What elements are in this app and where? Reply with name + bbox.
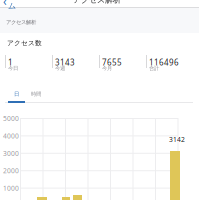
button[interactable]: 日 — [8, 88, 25, 100]
staticText: 7655 — [102, 57, 122, 68]
staticText: 4000 — [3, 131, 19, 140]
staticText: 今日 — [8, 65, 18, 72]
staticText: 1 — [8, 57, 13, 68]
staticText: 3000 — [3, 149, 19, 158]
staticText: 1000 — [3, 184, 19, 193]
staticText: 116496 — [149, 57, 179, 68]
staticText: 今週 — [55, 65, 65, 72]
staticText: ホーム — [8, 0, 24, 11]
staticText: アクセス解析 — [73, 0, 121, 5]
staticText: 日 — [14, 91, 19, 97]
staticText: 3143 — [55, 57, 75, 68]
staticText: 5000 — [3, 114, 19, 123]
staticText: 3142 — [169, 135, 185, 144]
staticText: 今月 — [102, 65, 112, 72]
staticText: 合計 — [149, 65, 159, 72]
staticText: ‹ — [3, 0, 7, 9]
staticText: アクセス解析 — [6, 19, 36, 26]
button[interactable]: 戻る — [3, 0, 31, 6]
staticText: 2000 — [3, 166, 19, 175]
button[interactable]: 時間 — [29, 88, 43, 100]
staticText: アクセス数 — [7, 39, 42, 47]
staticText: 時間 — [31, 91, 41, 97]
